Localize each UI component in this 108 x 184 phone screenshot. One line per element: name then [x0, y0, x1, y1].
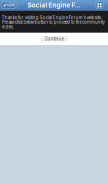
staticText: index. — [2, 24, 14, 30]
button[interactable]: Menu — [96, 2, 103, 9]
staticText: Thanks for visiting Social Engine Forum'… — [2, 15, 102, 20]
staticText: Please click below button to proceed to … — [2, 20, 104, 25]
staticText: Home — [5, 3, 15, 7]
button[interactable]: Home — [2, 2, 16, 8]
staticText: Continue — [44, 36, 63, 41]
button[interactable]: Continue — [40, 36, 68, 42]
staticText: Social Engine F… — [27, 1, 80, 9]
